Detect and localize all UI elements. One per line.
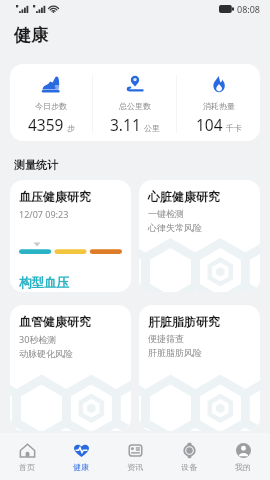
staticText: 08:08 — [237, 3, 261, 15]
staticText: 我的 — [235, 462, 251, 472]
button[interactable]: 总公里数 — [93, 71, 176, 135]
staticText: 资讯 — [127, 462, 143, 472]
other: 健康 — [73, 442, 90, 459]
other: 首页 — [19, 442, 36, 459]
staticText: 消耗热量 — [203, 101, 235, 111]
staticText: 动脉硬化风险 — [19, 348, 73, 359]
staticText: 12/07 09:23 — [19, 208, 69, 220]
staticText: 健康 — [14, 25, 48, 46]
staticText: 便捷筛查 — [148, 333, 184, 344]
staticText: 公里 — [144, 123, 160, 133]
button[interactable]: 血管健康研究 — [10, 305, 131, 431]
staticText: 肝脏脂肪研究 — [148, 314, 220, 329]
staticText: 血管健康研究 — [19, 314, 91, 329]
staticText: 今日步数 — [35, 101, 67, 111]
staticText: 血压健康研究 — [19, 189, 91, 204]
button[interactable]: 血压健康研究 — [10, 180, 131, 292]
button[interactable]: 健康 — [54, 433, 108, 480]
staticText: 心脏健康研究 — [148, 189, 220, 204]
other: 设备 — [181, 442, 198, 459]
staticText: 首页 — [19, 462, 35, 472]
other: 我的 — [235, 442, 252, 459]
staticText: 测量统计 — [14, 158, 58, 172]
button[interactable]: 首页 — [0, 433, 54, 480]
staticText: 4359 — [28, 114, 64, 135]
staticText: 设备 — [181, 462, 197, 472]
staticText: 心律失常风险 — [148, 222, 202, 233]
staticText: 健康 — [73, 462, 89, 472]
staticText: 步 — [67, 123, 75, 133]
staticText: 一键检测 — [148, 208, 184, 219]
other: 资讯 — [127, 442, 144, 459]
button[interactable]: 今日步数 — [10, 71, 92, 135]
button[interactable]: 我的 — [216, 433, 270, 480]
staticText: 构型血压 — [19, 275, 69, 291]
staticText: 104 — [196, 114, 223, 135]
button[interactable]: 心脏健康研究 — [139, 180, 260, 292]
button[interactable]: 设备 — [162, 433, 216, 480]
staticText: 总公里数 — [119, 101, 151, 111]
staticText: 千卡 — [226, 123, 242, 133]
button[interactable]: 消耗热量 — [177, 71, 260, 135]
staticText: 肝脏脂肪风险 — [148, 347, 202, 358]
staticText: 3.11 — [110, 114, 141, 135]
button[interactable]: 肝脏脂肪研究 — [139, 305, 260, 431]
staticText: 30秒检测 — [19, 333, 57, 345]
button[interactable]: 资讯 — [108, 433, 162, 480]
